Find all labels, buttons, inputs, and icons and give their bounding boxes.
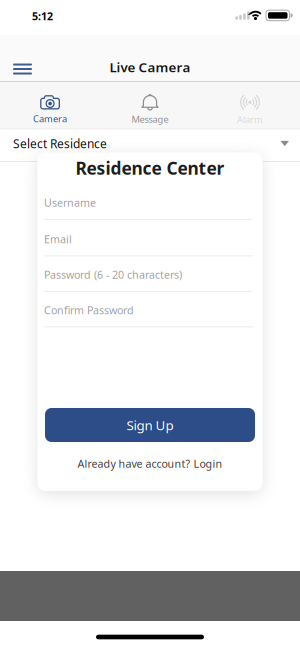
- button[interactable]: Message: [100, 82, 200, 128]
- staticText: 5:12: [32, 9, 53, 23]
- button[interactable]: Password (6 - 20 characters): [44, 267, 253, 292]
- staticText: Live Camera: [109, 58, 190, 76]
- staticText: Sign Up: [126, 416, 173, 434]
- button[interactable]: Alarm: [200, 82, 300, 128]
- staticText: Camera: [33, 112, 67, 125]
- button[interactable]: Select Residence: [0, 128, 300, 158]
- staticText: Message: [131, 113, 168, 125]
- staticText: Email: [44, 232, 72, 246]
- staticText: Select Residence: [13, 135, 107, 151]
- button[interactable]: Already have account? Login: [37, 455, 262, 471]
- staticText: Username: [44, 195, 96, 210]
- staticText: Alarm: [237, 113, 263, 126]
- staticText: Confirm Password: [44, 303, 134, 317]
- button[interactable]: Camera: [0, 82, 100, 128]
- button[interactable]: Confirm Password: [44, 303, 253, 328]
- staticText: Password (6 - 20 characters): [44, 267, 182, 282]
- button[interactable]: Menu: [6, 55, 38, 83]
- button[interactable]: Email: [44, 232, 253, 257]
- button[interactable]: Sign Up: [45, 408, 255, 442]
- staticText: Already have account? Login: [77, 456, 222, 471]
- button[interactable]: Username: [44, 195, 253, 220]
- staticText: Residence Center: [75, 156, 224, 179]
